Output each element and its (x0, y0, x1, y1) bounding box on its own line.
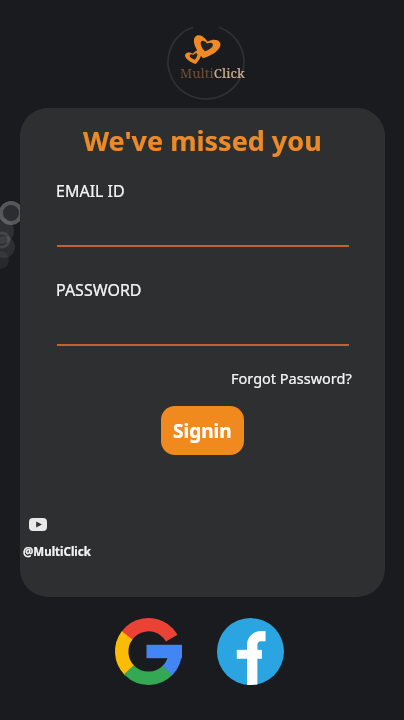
staticText: We've missed you (83, 122, 322, 159)
staticText: MultiClick (180, 64, 245, 82)
staticText: @MultiClick (23, 544, 91, 560)
staticText: Forgot Password? (231, 368, 352, 388)
staticText: EMAIL ID (56, 180, 125, 202)
button[interactable] (115, 618, 182, 685)
staticText: Signin (173, 418, 232, 444)
staticText: PASSWORD (56, 279, 142, 301)
button[interactable] (217, 618, 284, 685)
button[interactable]: Signin (161, 406, 244, 455)
button[interactable]: Forgot Password? (231, 368, 352, 388)
button[interactable] (29, 518, 47, 531)
